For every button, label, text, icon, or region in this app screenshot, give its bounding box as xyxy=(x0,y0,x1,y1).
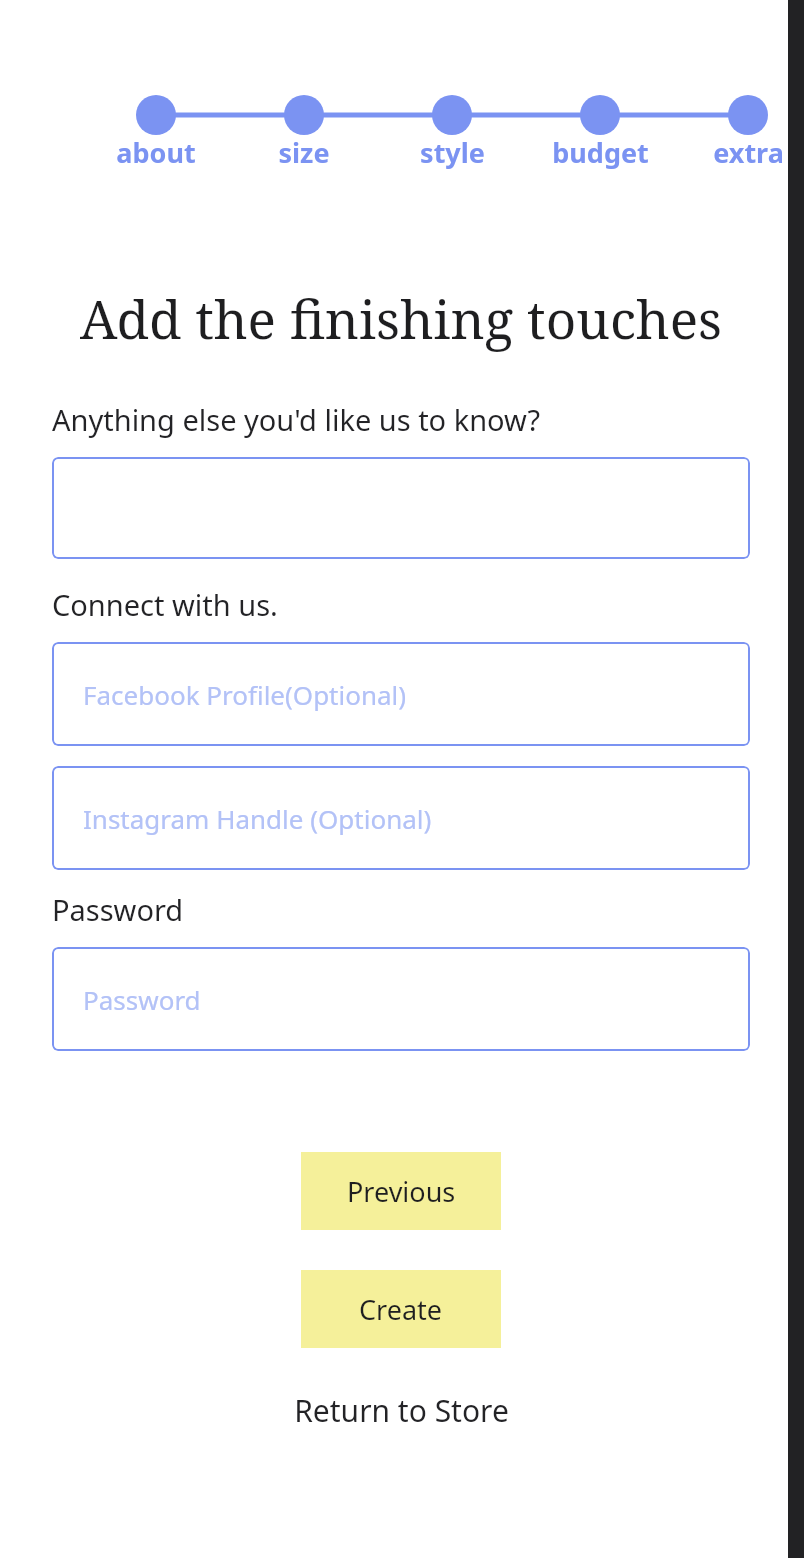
button[interactable]: Return to Store xyxy=(52,1390,750,1431)
staticText: budget xyxy=(552,134,649,171)
staticText: style xyxy=(420,134,485,171)
button[interactable]: Create xyxy=(301,1270,501,1348)
staticText: Add the finishing touches xyxy=(52,282,750,354)
staticText: Password xyxy=(52,890,184,929)
staticText: extra xyxy=(713,134,784,171)
button[interactable]: Previous xyxy=(301,1152,501,1230)
staticText: Create xyxy=(359,1291,443,1328)
staticText: Facebook Profile(Optional) xyxy=(83,677,407,712)
button[interactable]: Facebook Profile xyxy=(52,642,750,746)
staticText: Connect with us. xyxy=(52,585,278,624)
button[interactable]: budget xyxy=(530,134,670,171)
staticText: Password xyxy=(83,982,201,1017)
staticText: Return to Store xyxy=(294,1390,509,1431)
staticText: about xyxy=(116,134,196,171)
button[interactable]: Additional notes xyxy=(52,457,750,559)
staticText: size xyxy=(278,134,330,171)
staticText: Anything else you'd like us to know? xyxy=(52,400,541,439)
button[interactable]: style xyxy=(382,134,522,171)
staticText: Instagram Handle (Optional) xyxy=(83,801,432,836)
button[interactable]: about xyxy=(86,134,226,171)
button[interactable]: extra xyxy=(678,134,804,171)
button[interactable]: Password xyxy=(52,947,750,1051)
button[interactable]: Instagram Handle xyxy=(52,766,750,870)
staticText: Previous xyxy=(347,1173,456,1210)
button[interactable]: size xyxy=(234,134,374,171)
